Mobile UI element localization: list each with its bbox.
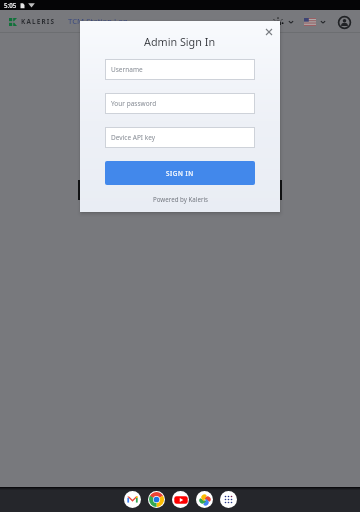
button[interactable]: Alerts (270, 14, 286, 30)
button[interactable]: Close (262, 25, 276, 39)
staticText: Username (111, 65, 143, 74)
button[interactable]: Gmail (124, 491, 141, 508)
staticText: KALERIS (21, 17, 56, 26)
button[interactable]: SIGN IN (105, 161, 255, 185)
staticText: Your password (111, 99, 157, 108)
button[interactable]: Chrome (148, 491, 165, 508)
button[interactable]: All apps (220, 491, 237, 508)
button[interactable]: Photos (196, 491, 213, 508)
staticText: Powered by Kaleris (153, 195, 208, 203)
button[interactable]: Username (111, 59, 255, 80)
staticText: Admin Sign In (144, 34, 216, 49)
button[interactable]: Device API key (111, 127, 255, 148)
button[interactable]: Account (336, 14, 352, 30)
staticText: Device API key (111, 133, 156, 142)
staticText: 5:05 (4, 1, 17, 9)
staticText: SIGN IN (166, 169, 194, 178)
staticText: TCM Station Log (68, 16, 128, 27)
button[interactable]: YouTube (172, 491, 189, 508)
button[interactable]: Your password (111, 93, 255, 114)
button[interactable]: Language (302, 14, 318, 30)
